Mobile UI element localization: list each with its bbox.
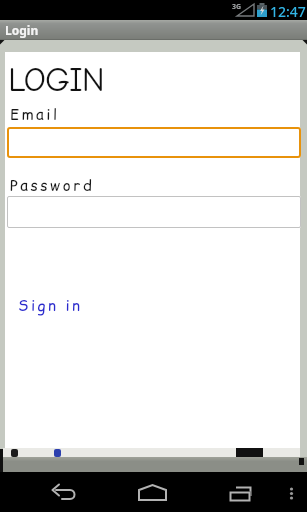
staticText: Email xyxy=(10,104,60,125)
staticText: Login xyxy=(5,22,39,38)
button[interactable] xyxy=(205,472,307,512)
staticText: 3G xyxy=(232,2,242,12)
button[interactable] xyxy=(0,472,103,512)
button[interactable] xyxy=(7,127,301,158)
staticText: Sign in xyxy=(18,295,83,316)
button[interactable]: Sign in xyxy=(14,291,87,320)
staticText: 12:47 xyxy=(270,2,306,21)
staticText: LOGIN xyxy=(8,59,104,99)
button[interactable] xyxy=(7,196,301,228)
button[interactable] xyxy=(103,472,205,512)
staticText: Password xyxy=(10,175,95,196)
